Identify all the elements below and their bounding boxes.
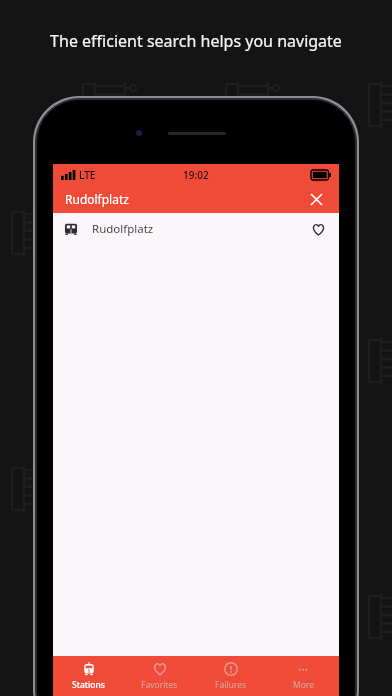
button[interactable]: Rudolfplatz [53, 213, 339, 245]
button[interactable]: Favorites [124, 656, 195, 696]
staticText: Rudolfplatz [92, 221, 308, 237]
staticText: More [293, 679, 314, 691]
button[interactable]: Stations [53, 656, 124, 696]
button[interactable]: More [267, 656, 339, 696]
button[interactable]: Add to favorites [308, 219, 328, 239]
staticText: 19:02 [183, 168, 209, 182]
button[interactable]: Clear search [305, 188, 327, 210]
staticText: Rudolfplatz [65, 191, 305, 207]
button[interactable]: Failures [195, 656, 267, 696]
staticText: Favorites [141, 679, 178, 691]
staticText: The efficient search helps you navigate [50, 30, 342, 52]
staticText: LTE [79, 168, 96, 182]
staticText: Stations [72, 679, 105, 691]
staticText: Failures [215, 679, 247, 691]
